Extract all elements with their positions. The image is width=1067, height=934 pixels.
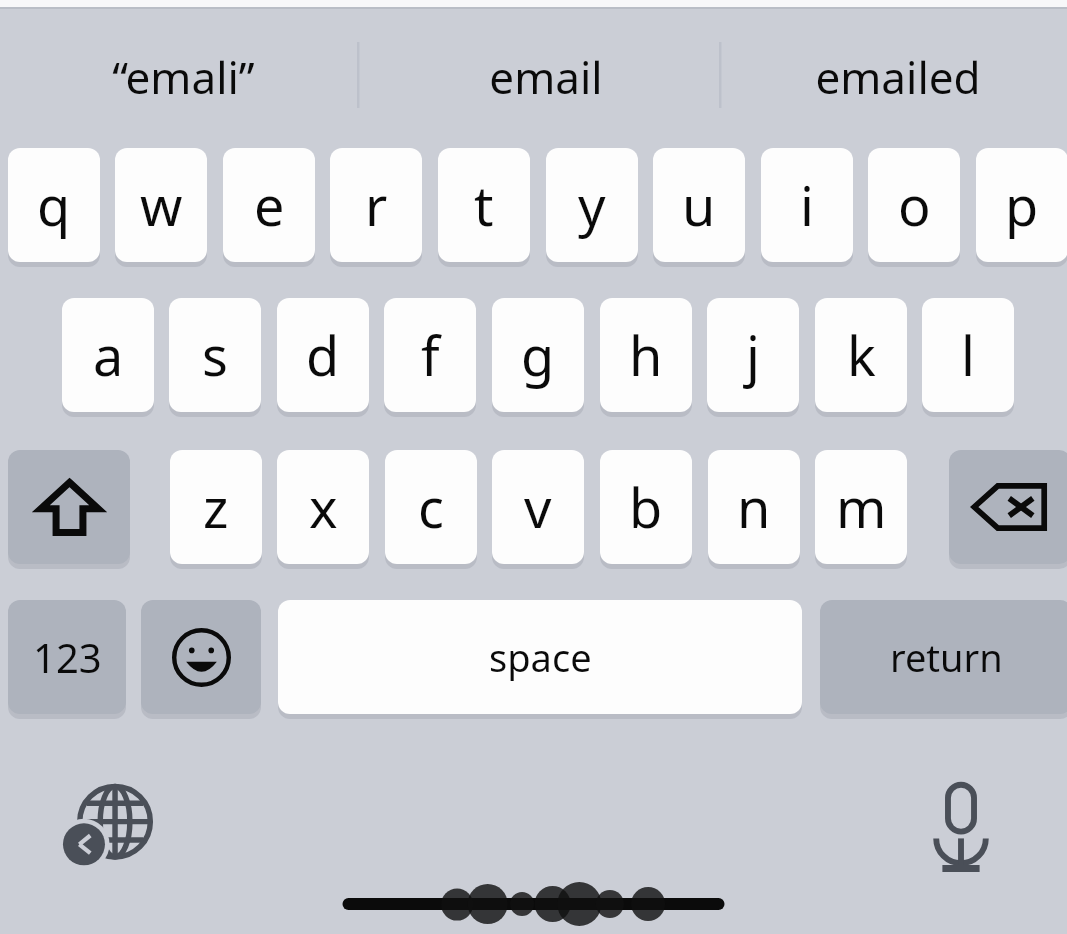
staticText: return	[890, 631, 1003, 683]
staticText: b	[629, 470, 663, 544]
button[interactable]: Switch keyboard language	[68, 783, 152, 867]
staticText: k	[847, 318, 876, 392]
button[interactable]: 123	[8, 600, 126, 714]
staticText: 123	[33, 630, 102, 684]
staticText: email	[489, 47, 603, 107]
staticText: n	[737, 470, 771, 544]
button[interactable]: s	[169, 298, 261, 412]
button[interactable]: v	[492, 450, 584, 564]
button[interactable]: q	[8, 148, 100, 262]
staticText: m	[836, 470, 887, 544]
staticText: q	[37, 168, 71, 242]
button[interactable]: h	[600, 298, 692, 412]
button[interactable]: u	[653, 148, 745, 262]
button[interactable]: z	[170, 450, 262, 564]
button[interactable]: Emoji	[141, 600, 261, 714]
staticText: z	[203, 470, 229, 544]
button[interactable]: x	[277, 450, 369, 564]
staticText: c	[418, 470, 444, 544]
staticText: p	[1005, 168, 1039, 242]
staticText: v	[524, 470, 552, 544]
staticText: space	[489, 631, 592, 683]
staticText: f	[421, 318, 440, 392]
button[interactable]: j	[707, 298, 799, 412]
button[interactable]: Backspace	[949, 450, 1067, 564]
staticText: j	[746, 318, 760, 392]
staticText: “emali”	[112, 47, 255, 107]
staticText: r	[365, 168, 388, 242]
staticText: y	[578, 168, 606, 242]
button[interactable]: m	[815, 450, 907, 564]
button[interactable]: d	[277, 298, 369, 412]
button[interactable]: f	[384, 298, 476, 412]
button[interactable]: Shift	[8, 450, 130, 564]
staticText: t	[474, 168, 494, 242]
button[interactable]: r	[330, 148, 422, 262]
button[interactable]: i	[761, 148, 853, 262]
button[interactable]: Dictate	[930, 783, 992, 873]
staticText: w	[140, 168, 183, 242]
button[interactable]: k	[815, 298, 907, 412]
staticText: i	[800, 168, 814, 242]
button[interactable]: l	[922, 298, 1014, 412]
button[interactable]: e	[223, 148, 315, 262]
button[interactable]: g	[492, 298, 584, 412]
button[interactable]: t	[438, 148, 530, 262]
staticText: s	[202, 318, 228, 392]
button[interactable]: y	[546, 148, 638, 262]
button[interactable]: p	[976, 148, 1067, 262]
button[interactable]: n	[708, 450, 800, 564]
staticText: h	[629, 318, 663, 392]
button[interactable]: b	[600, 450, 692, 564]
button[interactable]: “emali”	[10, 46, 357, 108]
staticText: e	[254, 168, 285, 242]
staticText: u	[682, 168, 716, 242]
staticText: g	[521, 318, 555, 392]
button[interactable]: c	[385, 450, 477, 564]
button[interactable]: w	[115, 148, 207, 262]
button[interactable]: email	[372, 46, 719, 108]
staticText: emailed	[815, 47, 981, 107]
button[interactable]: return	[820, 600, 1067, 714]
staticText: l	[961, 318, 975, 392]
staticText: x	[309, 470, 338, 544]
staticText: d	[306, 318, 340, 392]
staticText: a	[93, 318, 124, 392]
staticText: o	[898, 168, 931, 242]
button[interactable]: space	[278, 600, 802, 714]
button[interactable]: a	[62, 298, 154, 412]
button[interactable]: emailed	[733, 46, 1063, 108]
button[interactable]: o	[868, 148, 960, 262]
